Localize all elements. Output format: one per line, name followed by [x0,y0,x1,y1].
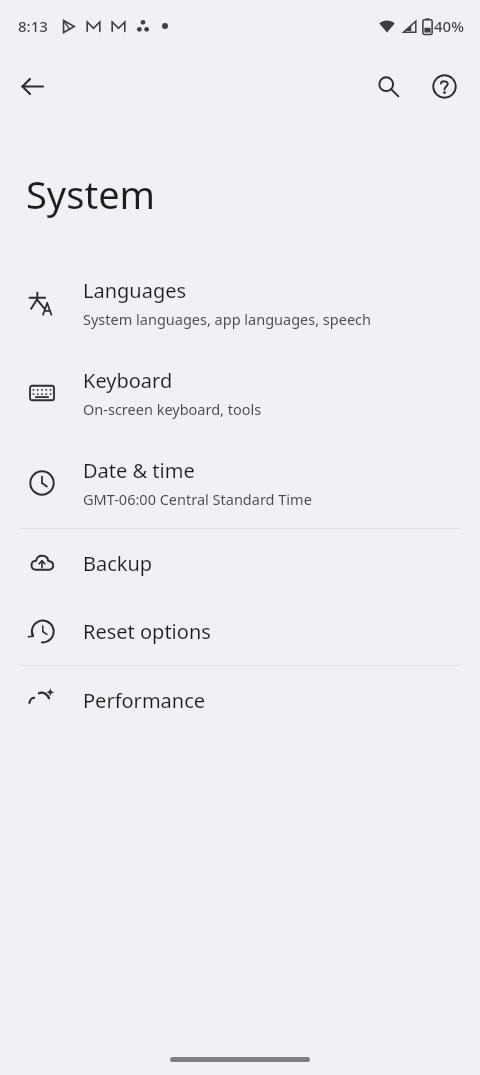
staticText: GMT-06:00 Central Standard Time [83,489,312,509]
staticText: Date & time [83,457,195,484]
button[interactable]: Back [8,62,56,110]
button[interactable]: Date & time [0,438,480,528]
staticText: Languages [83,277,187,304]
button[interactable]: Languages [0,258,480,348]
button[interactable]: Help [420,62,468,110]
staticText: System [26,168,156,220]
button[interactable]: Keyboard [0,348,480,438]
staticText: Reset options [83,618,211,645]
staticText: Performance [83,687,206,714]
staticText: Backup [83,550,153,577]
staticText: 40% [434,16,464,36]
button[interactable]: Performance [0,666,480,734]
button[interactable]: Backup [0,529,480,597]
staticText: On-screen keyboard, tools [83,399,262,419]
button[interactable]: Search [364,62,412,110]
staticText: System languages, app languages, speech [83,309,372,329]
button[interactable]: Reset options [0,597,480,665]
staticText: Keyboard [83,367,173,394]
staticText: 8:13 [18,16,48,36]
